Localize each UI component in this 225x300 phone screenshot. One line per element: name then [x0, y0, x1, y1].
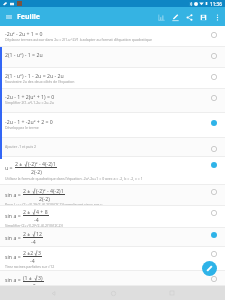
button[interactable]: sin a = [0, 185, 225, 206]
button[interactable]: 2(1 - u²) - 1 = 2u [0, 47, 225, 68]
staticText: 2 ± [15, 160, 24, 167]
staticText: Simplifier (2+√((-2)²/2-4(-2)1))/(2(-2)) [5, 223, 63, 227]
button[interactable]: -2u² - 2u + 1 = 0 [0, 26, 225, 47]
staticText: Déplacez termes autour dans 2u = 2(1-u^2… [5, 37, 153, 42]
staticText: 3 [38, 249, 41, 256]
button[interactable]: Share [182, 10, 196, 24]
staticText: -2u² - 2u + 1 = 0 [5, 30, 43, 37]
staticText: Feuille [17, 12, 41, 22]
staticText: (-2)² - 4(-2)1 [28, 160, 56, 167]
staticText: Simplifier 2(1-u²)-1-2u = 2u-2u [5, 100, 54, 105]
staticText: 2(1 - u²) - 1 = 2u [5, 51, 43, 58]
staticText: (1 ± [23, 274, 34, 281]
staticText: 11:36 [210, 1, 222, 7]
button[interactable]: More options [210, 10, 224, 24]
button[interactable]: 2(1 - u²) - 1 - 2u = 2u - 2u [0, 68, 225, 89]
staticText: Utilisez la formule quadratique dans l'é… [5, 176, 143, 181]
staticText: Développez le terme [5, 125, 39, 130]
button[interactable]: Graph [154, 10, 168, 24]
staticText: 2 ± [23, 187, 32, 194]
staticText: 2(-2) [31, 168, 42, 175]
button[interactable]: sin a = [0, 206, 225, 228]
staticText: -4 [34, 216, 39, 223]
staticText: -2u - 1 + -2u² + 2 = 0 [5, 118, 53, 125]
staticText: 2 ± [23, 230, 32, 237]
button[interactable]: sin a = [0, 271, 225, 286]
button[interactable]: sin a = [0, 247, 225, 271]
staticText: sin a = [5, 253, 21, 260]
staticText: 2 ± [23, 208, 32, 215]
staticText: sin a = [5, 234, 21, 241]
staticText: u = [5, 164, 13, 171]
staticText: 2(1 - u²) - 1 - 2u = 2u - 2u [5, 72, 64, 79]
staticText: sin a = [5, 276, 21, 283]
staticText: -2u - 1 + 2(u² + 1) = 0 [5, 93, 55, 100]
staticText: sin a = [5, 191, 21, 198]
button[interactable]: -2u - 1 + 2(u² + 1) = 0 [0, 89, 225, 113]
staticText: 12 [36, 230, 42, 237]
staticText: Tirez racines parfaites sur √12 [5, 264, 55, 269]
button[interactable]: Open navigation drawer [0, 8, 17, 25]
staticText: -2 [31, 282, 36, 285]
staticText: Ajouter -1 et puis 2 [5, 144, 37, 149]
button[interactable]: Edit [168, 10, 182, 24]
button[interactable]: -2u - 1 + -2u² + 2 = 0 [0, 113, 225, 138]
staticText: sin a = [5, 212, 21, 219]
staticText: Soustraire 2u des deux côtés de l'équati… [5, 79, 75, 84]
staticText: (-2)² - 4(-2)1 [36, 187, 64, 194]
button[interactable]: Ajouter -1 et puis 2 [0, 138, 225, 157]
staticText: 4 + 8 [36, 208, 48, 215]
staticText: -4 [30, 257, 35, 264]
button[interactable]: u = [0, 157, 225, 185]
staticText: Pose L u = (2+√((-2)²/2-4(-2)1))/(2(-2))… [5, 202, 103, 205]
button[interactable]: Edit [202, 261, 217, 276]
staticText: 3) [38, 274, 43, 281]
staticText: 2(-2) [39, 195, 50, 202]
staticText: -4 [31, 238, 36, 245]
staticText: 2 ±2 [23, 249, 34, 256]
button[interactable]: sin a = [0, 228, 225, 247]
button[interactable]: Save [196, 10, 210, 24]
